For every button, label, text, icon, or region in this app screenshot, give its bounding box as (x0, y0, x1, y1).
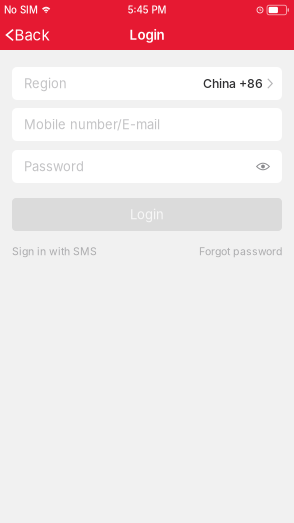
button[interactable]: Region (12, 67, 282, 100)
button[interactable]: Show password (252, 155, 274, 177)
staticText: Back (15, 26, 50, 44)
button[interactable]: Back (0, 20, 59, 50)
staticText: Login (130, 207, 164, 222)
button[interactable]: Forgot password (199, 245, 282, 258)
staticText: Mobile number/E-mail (24, 117, 160, 132)
staticText: No SIM (4, 4, 38, 16)
staticText: Forgot password (199, 245, 282, 258)
button[interactable]: Sign in with SMS (12, 245, 97, 258)
staticText: 5:45 PM (127, 4, 166, 16)
staticText: Password (24, 159, 84, 174)
staticText: China +86 (203, 76, 263, 91)
staticText: Region (24, 76, 67, 91)
staticText: Login (129, 27, 164, 43)
staticText: Sign in with SMS (12, 245, 97, 258)
